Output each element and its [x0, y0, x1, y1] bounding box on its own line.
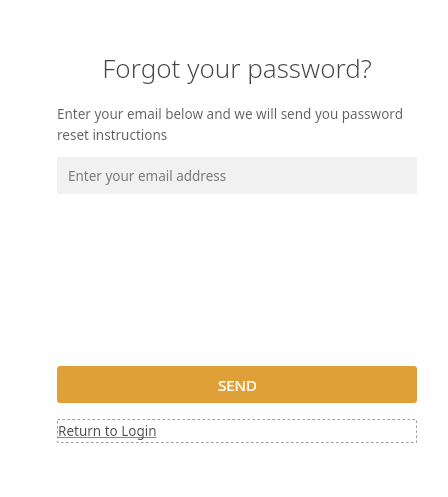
staticText: SEND	[218, 375, 257, 395]
button[interactable]: SEND	[57, 366, 417, 403]
button[interactable]: Return to Login	[57, 419, 417, 443]
staticText: Return to Login	[58, 422, 157, 440]
staticText: Enter your email below and we will send …	[57, 105, 417, 144]
button[interactable]: Enter your email address	[57, 157, 417, 194]
staticText: Forgot your password?	[57, 50, 417, 85]
staticText: Enter your email address	[68, 167, 227, 185]
